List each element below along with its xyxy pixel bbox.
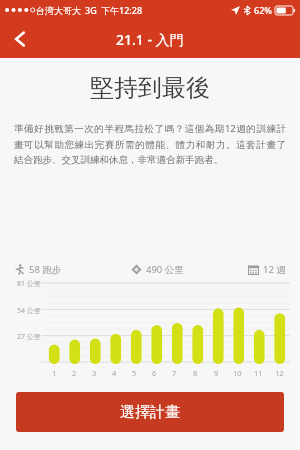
staticText: 62% — [254, 4, 272, 16]
staticText: 3 — [92, 368, 97, 378]
staticText: 3G — [85, 4, 97, 16]
staticText: 台湾大哥大 — [36, 5, 81, 16]
staticText: 10 — [233, 368, 242, 378]
staticText: 1 — [52, 368, 57, 378]
staticText: 堅持到最後 — [0, 73, 300, 103]
staticText: 81 公里 — [17, 279, 41, 289]
staticText: 490 公里 — [146, 263, 184, 276]
staticText: 12 — [275, 368, 284, 378]
staticText: 2 — [72, 368, 77, 378]
staticText: 11 — [254, 368, 263, 378]
staticText: 6 — [152, 368, 157, 378]
staticText: 7 — [172, 368, 177, 378]
button[interactable]: 選擇計畫 — [16, 392, 284, 432]
staticText: 27 公里 — [17, 332, 41, 342]
staticText: 21.1 - 入門 — [116, 30, 184, 49]
staticText: 58 跑步 — [29, 263, 62, 276]
staticText: 準備好挑戰第一次的半程馬拉松了嗎？ 這個為期 12 週的訓練計畫可以幫助您練出完… — [14, 122, 286, 166]
staticText: 9 — [214, 368, 219, 378]
staticText: 4 — [112, 368, 117, 378]
staticText: 下午12:28 — [101, 4, 143, 16]
staticText: 54 公里 — [17, 306, 41, 316]
staticText: 8 — [193, 368, 198, 378]
button[interactable]: Back — [0, 20, 40, 58]
staticText: 選擇計畫 — [120, 403, 180, 422]
staticText: 12 週 — [263, 263, 286, 276]
staticText: 5 — [132, 368, 137, 378]
